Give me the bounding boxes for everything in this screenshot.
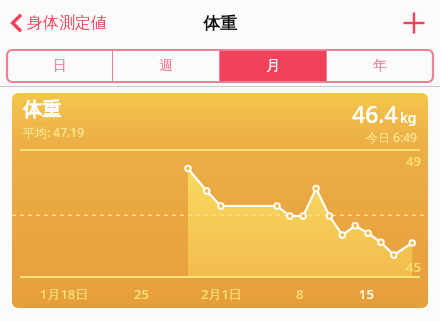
button[interactable]: 日 — [7, 50, 112, 82]
staticText: 日 — [53, 57, 67, 75]
staticText: 身体測定値 — [27, 13, 107, 33]
button[interactable]: 年 — [327, 50, 433, 82]
staticText: 体重 — [23, 98, 61, 122]
staticText: 8 — [296, 285, 304, 303]
staticText: 体重 — [203, 13, 237, 34]
staticText: 平均: 47.19 — [23, 124, 85, 140]
staticText: 月 — [266, 57, 280, 75]
staticText: 15 — [359, 285, 374, 303]
staticText: kg — [400, 108, 417, 127]
staticText: 今日 6:49 — [366, 129, 417, 145]
button[interactable]: 月 — [220, 50, 326, 82]
button[interactable]: 週 — [113, 50, 219, 82]
staticText: 49 — [406, 152, 421, 170]
staticText: 25 — [134, 285, 149, 303]
staticText: 45 — [406, 258, 421, 276]
button[interactable]: 体重 — [12, 93, 428, 308]
button[interactable]: 身体測定値 — [9, 11, 107, 35]
staticText: 46.4 — [352, 98, 398, 129]
staticText: 週 — [159, 57, 173, 75]
staticText: 2月1日 — [201, 285, 242, 303]
button[interactable]: Add — [398, 7, 430, 39]
staticText: 年 — [373, 57, 387, 75]
staticText: 1月18日 — [40, 285, 89, 303]
